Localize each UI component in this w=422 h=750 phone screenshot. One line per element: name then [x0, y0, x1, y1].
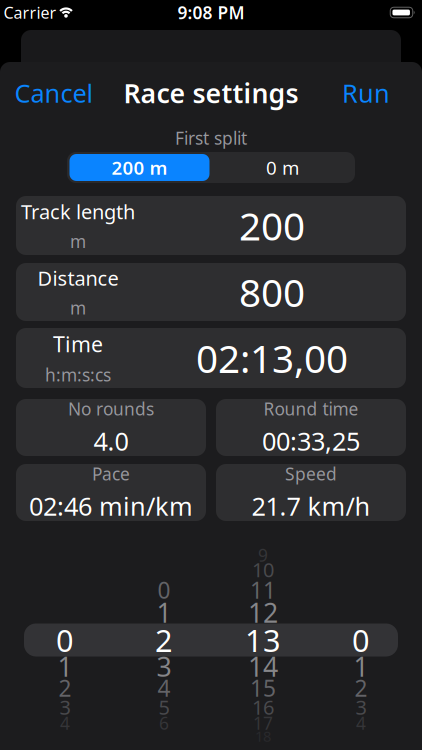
- staticText: 18: [255, 726, 271, 746]
- staticText: 21.7 km/h: [251, 489, 370, 523]
- staticText: Race settings: [123, 75, 298, 111]
- staticText: 2: [155, 620, 173, 660]
- staticText: 00:33,25: [262, 424, 360, 458]
- staticText: 200 m: [111, 155, 167, 180]
- staticText: 11: [250, 575, 276, 605]
- staticText: 6: [159, 711, 169, 734]
- staticText: 4.0: [93, 424, 128, 458]
- staticText: Pace: [92, 462, 130, 485]
- staticText: 3: [156, 649, 171, 684]
- staticText: 5: [158, 694, 169, 720]
- staticText: 14: [248, 649, 278, 684]
- staticText: First split: [175, 126, 247, 149]
- staticText: h:m:s:cs: [45, 363, 111, 386]
- staticText: Track length: [21, 198, 135, 225]
- staticText: 15: [250, 673, 276, 703]
- staticText: 0 m: [266, 155, 299, 180]
- staticText: 4: [157, 673, 170, 703]
- staticText: 17: [253, 711, 273, 734]
- staticText: 200: [239, 200, 305, 251]
- staticText: 2: [58, 673, 71, 703]
- button[interactable]: Pace: [16, 464, 206, 521]
- staticText: 02:13,00: [196, 332, 348, 384]
- button[interactable]: Round time: [216, 399, 406, 456]
- staticText: No rounds: [68, 397, 154, 420]
- staticText: 1: [57, 649, 72, 684]
- button[interactable]: Time: [16, 328, 406, 388]
- staticText: 10: [252, 556, 274, 583]
- button[interactable]: 200 m: [69, 154, 209, 181]
- staticText: 9:08 PM: [177, 1, 244, 24]
- staticText: 1: [156, 595, 171, 630]
- staticText: 0: [157, 575, 170, 605]
- staticText: Speed: [285, 462, 337, 485]
- staticText: 2: [354, 673, 367, 703]
- button[interactable]: No rounds: [16, 399, 206, 456]
- button[interactable]: Run: [342, 76, 390, 110]
- staticText: Distance: [37, 265, 118, 291]
- staticText: Run: [342, 76, 390, 110]
- staticText: 13: [245, 620, 281, 660]
- staticText: 3: [59, 694, 70, 720]
- staticText: m: [70, 230, 86, 253]
- staticText: Round time: [263, 397, 358, 420]
- staticText: 9: [258, 543, 268, 566]
- staticText: 4: [60, 711, 70, 734]
- staticText: 12: [248, 595, 278, 630]
- staticText: 0: [56, 620, 74, 660]
- staticText: 02:46 min/km: [29, 489, 193, 523]
- staticText: m: [70, 296, 86, 319]
- staticText: 0: [352, 620, 370, 660]
- button[interactable]: Distance: [16, 263, 406, 321]
- staticText: Carrier: [3, 2, 56, 23]
- button[interactable]: 0 m: [212, 154, 352, 181]
- staticText: Time: [53, 330, 103, 358]
- button[interactable]: Speed: [216, 464, 406, 521]
- staticText: 3: [355, 694, 366, 720]
- staticText: Cancel: [14, 76, 93, 110]
- button[interactable]: Track length: [16, 196, 406, 255]
- staticText: 16: [252, 694, 274, 720]
- staticText: 800: [239, 266, 305, 318]
- staticText: 1: [353, 649, 368, 684]
- button[interactable]: Cancel: [14, 76, 93, 110]
- staticText: 4: [356, 711, 366, 734]
